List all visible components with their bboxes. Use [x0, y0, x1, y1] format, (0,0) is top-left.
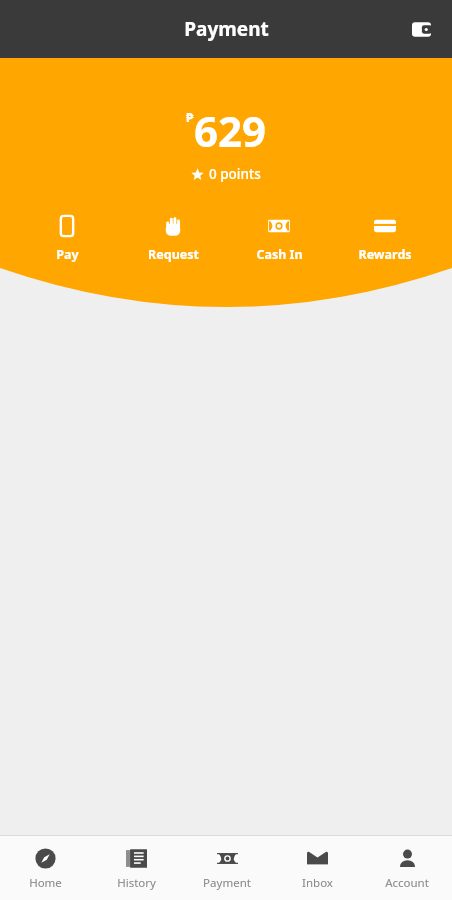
button[interactable]: Wallet	[404, 12, 438, 46]
button[interactable]: Home	[0, 836, 91, 900]
button[interactable]: Inbox	[272, 836, 362, 900]
staticText: History	[117, 875, 156, 891]
button[interactable]: Request	[120, 211, 226, 265]
staticText: Pay	[56, 246, 79, 263]
staticText: Home	[29, 875, 62, 891]
staticText: ₱	[186, 108, 194, 126]
staticText: Request	[148, 246, 199, 263]
staticText: Payment	[184, 16, 269, 42]
staticText: 0 points	[209, 165, 261, 183]
button[interactable]: Rewards	[332, 211, 438, 265]
button[interactable]: Account	[362, 836, 452, 900]
staticText: Cash In	[256, 246, 303, 263]
staticText: Account	[385, 875, 429, 891]
staticText: Rewards	[358, 246, 412, 263]
button[interactable]: Pay	[14, 211, 120, 265]
staticText: Inbox	[302, 875, 333, 891]
staticText: 629	[194, 102, 267, 159]
button[interactable]: Payment	[182, 836, 272, 900]
button[interactable]: History	[91, 836, 182, 900]
staticText: Payment	[203, 875, 251, 891]
button[interactable]: Cash In	[226, 211, 332, 265]
